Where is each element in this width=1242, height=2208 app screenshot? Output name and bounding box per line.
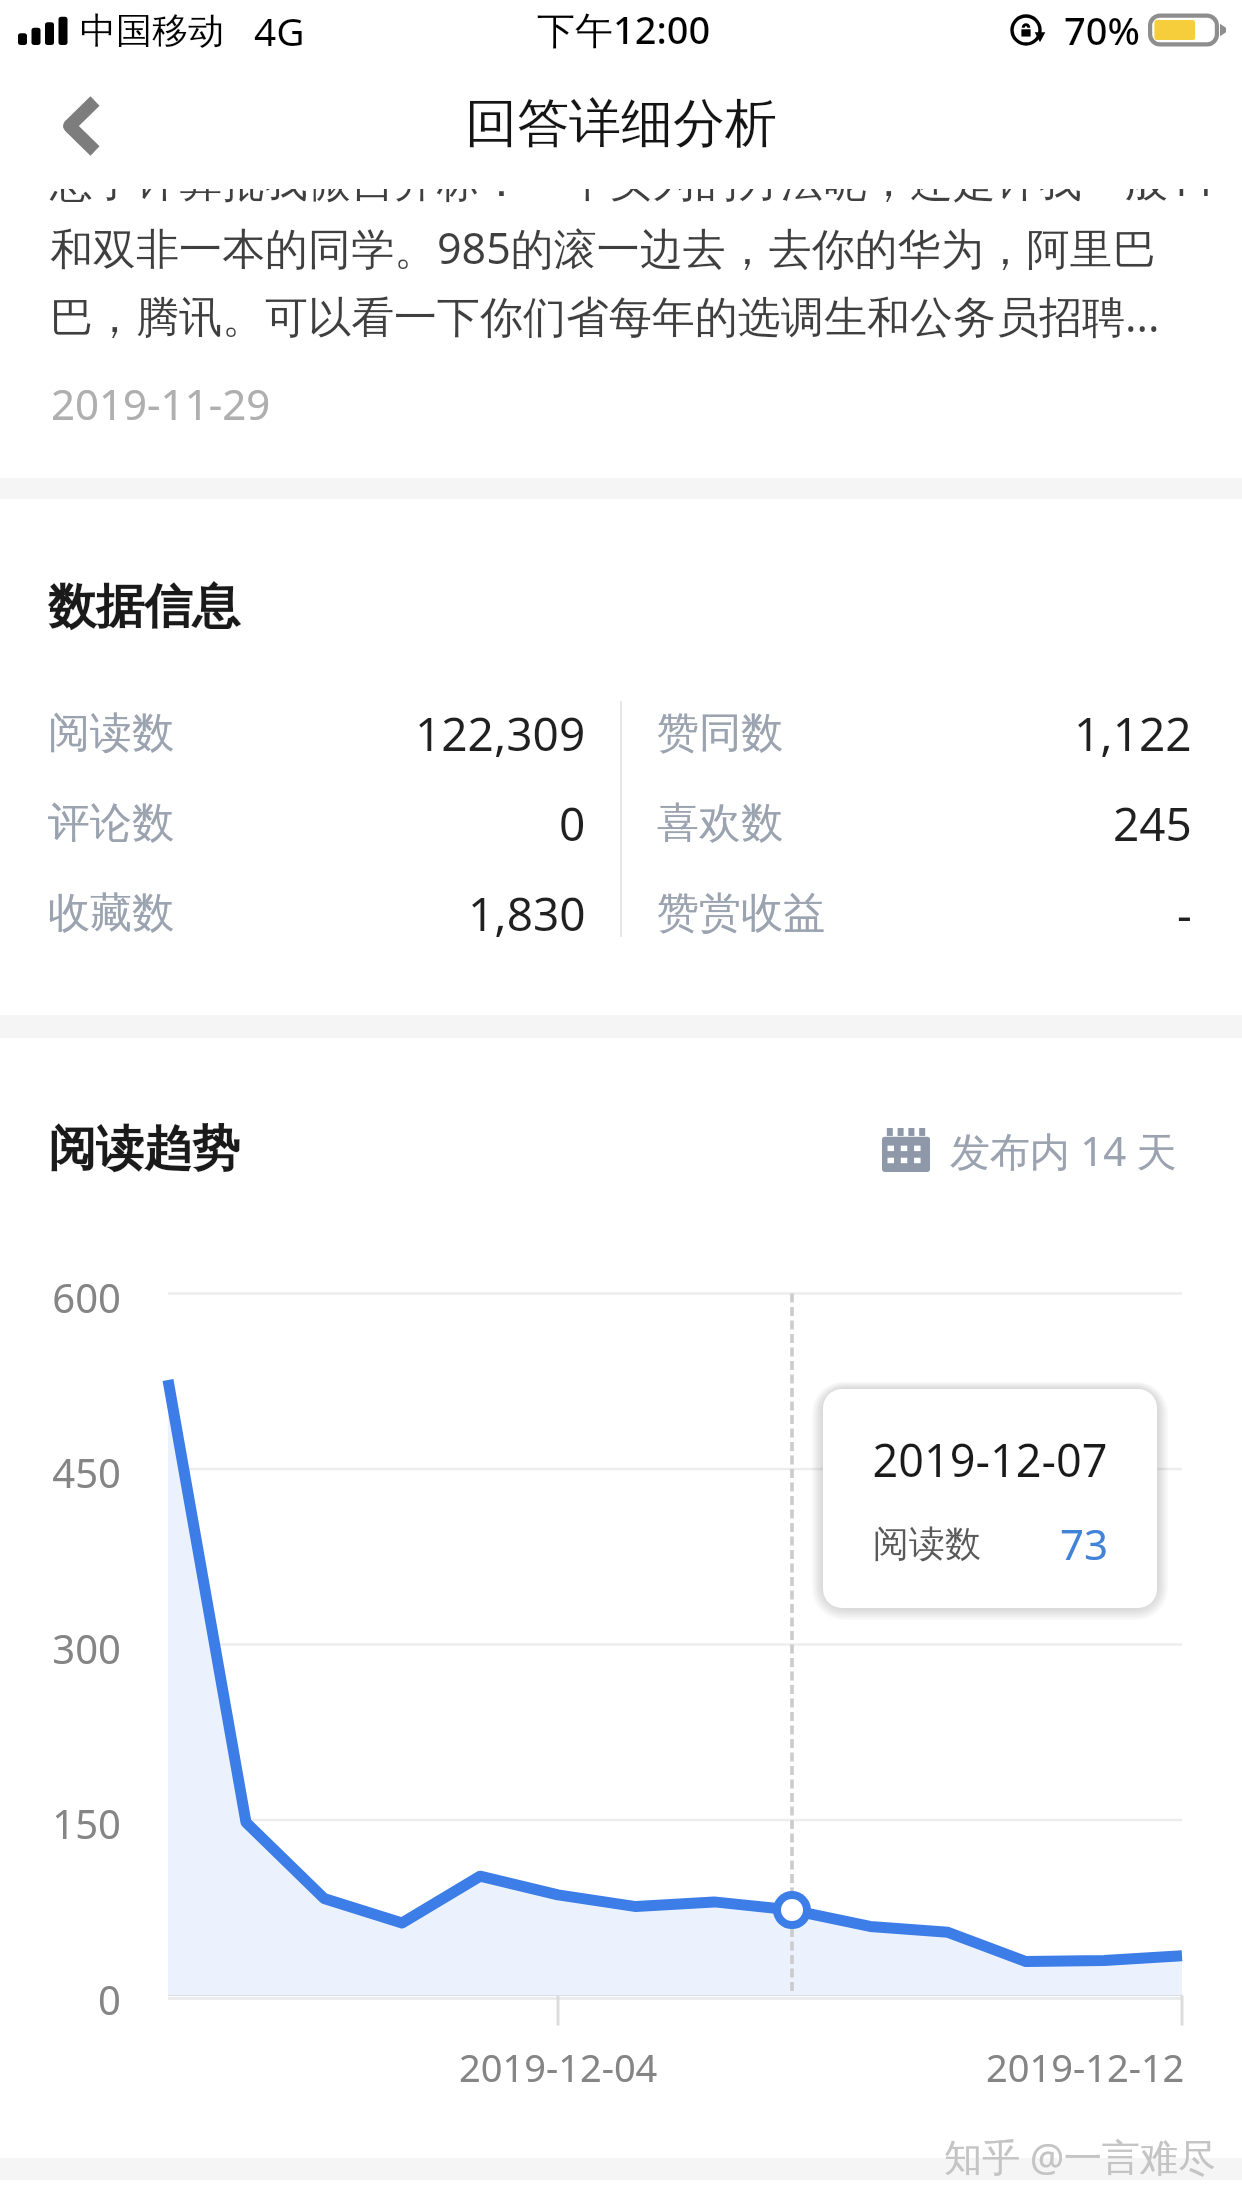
- staticText: -: [1177, 882, 1192, 945]
- staticText: 600: [0, 1270, 121, 1324]
- staticText: 150: [0, 1796, 121, 1850]
- staticText: 下午12:00: [537, 3, 711, 55]
- staticText: 73: [1060, 1515, 1109, 1572]
- staticText: 0: [559, 792, 586, 855]
- staticText: 评论数: [48, 797, 174, 850]
- staticText: 阅读数: [873, 1521, 981, 1566]
- staticText: 2019-12-04: [459, 2041, 658, 2093]
- staticText: 阅读数: [48, 707, 174, 760]
- staticText: 发布内 14 天: [950, 1123, 1177, 1178]
- staticText: 数据信息: [48, 577, 240, 637]
- button[interactable]: 评论数: [48, 779, 586, 867]
- staticText: 中国移动: [80, 8, 224, 53]
- staticText: 122,309: [415, 702, 586, 765]
- other: Rotation lock: [1010, 13, 1044, 47]
- staticText: 赞同数: [657, 707, 783, 760]
- staticText: 1,122: [1074, 702, 1192, 765]
- button[interactable]: 赞同数: [657, 689, 1192, 777]
- button[interactable]: 发布内 14 天: [872, 1118, 1177, 1182]
- staticText: 回答详细分析: [465, 91, 777, 157]
- staticText: 阅读趋势: [48, 1119, 240, 1179]
- button[interactable]: 收藏数: [48, 869, 586, 957]
- staticText: 知乎 @一言难尽: [944, 2130, 1217, 2182]
- staticText: 2019-12-12: [986, 2041, 1185, 2093]
- staticText: 245: [1113, 792, 1192, 855]
- staticText: 2019-12-07: [823, 1429, 1157, 1490]
- staticText: 1,830: [468, 882, 586, 945]
- staticText: 300: [0, 1621, 121, 1675]
- staticText: 巴，腾讯。可以看一下你们省每年的选调生和公务员招聘...: [50, 286, 1160, 345]
- staticText: 4G: [254, 4, 305, 57]
- staticText: 收藏数: [48, 887, 174, 940]
- button[interactable]: 喜欢数: [657, 779, 1192, 867]
- staticText: 70%: [1064, 4, 1140, 56]
- staticText: 2019-11-29: [51, 375, 271, 432]
- button[interactable]: 阅读数: [48, 689, 586, 777]
- button[interactable]: 2019-12-07: [823, 1389, 1157, 1608]
- staticText: 您了许算批我微自并标：一个实为的方法呢，还是许我一般11: [50, 150, 1218, 209]
- button[interactable]: 赞赏收益: [657, 869, 1192, 957]
- button[interactable]: Back: [0, 66, 150, 166]
- staticText: 0: [0, 1972, 121, 2026]
- staticText: 赞赏收益: [657, 887, 825, 940]
- staticText: 和双非一本的同学。985的滚一边去，去你的华为，阿里巴: [50, 218, 1156, 277]
- staticText: 喜欢数: [657, 797, 783, 850]
- staticText: 450: [0, 1445, 121, 1499]
